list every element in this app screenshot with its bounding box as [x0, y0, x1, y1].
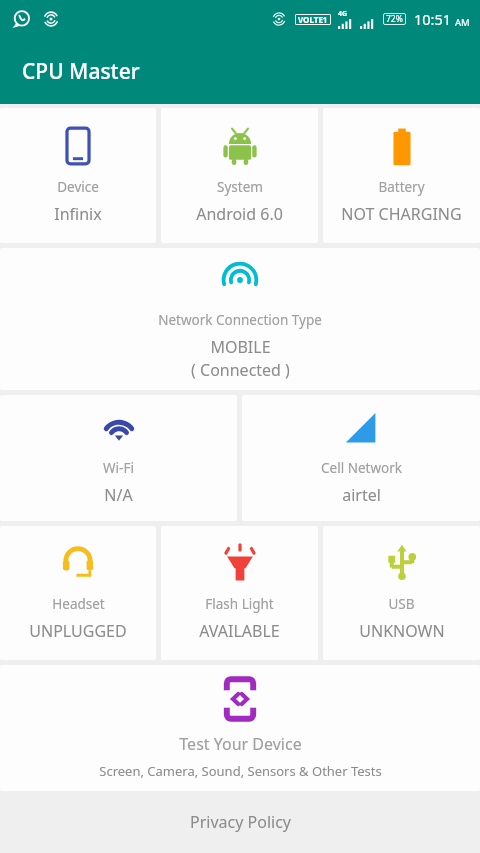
staticText: Device: [57, 178, 99, 196]
staticText: airtel: [342, 484, 381, 506]
staticText: AM: [455, 16, 470, 29]
staticText: AVAILABLE: [199, 620, 280, 642]
button[interactable]: Device: [0, 108, 156, 243]
staticText: MOBILE: [210, 336, 271, 358]
staticText: N/A: [104, 484, 133, 506]
button[interactable]: System: [161, 108, 318, 243]
staticText: ( Connected ): [191, 359, 290, 381]
staticText: 10:51: [414, 9, 452, 29]
button[interactable]: Wi-Fi: [0, 395, 237, 521]
staticText: 72%: [386, 13, 403, 25]
staticText: NOT CHARGING: [341, 203, 462, 225]
staticText: Headset: [52, 595, 105, 613]
staticText: System: [217, 178, 263, 196]
staticText: Network Connection Type: [158, 311, 322, 329]
button[interactable]: Flash Light: [161, 526, 318, 660]
button[interactable]: Headset: [0, 526, 156, 660]
staticText: 4G: [338, 9, 348, 19]
staticText: CPU Master: [22, 57, 140, 86]
other: CPU Master: [0, 38, 480, 104]
button[interactable]: USB: [323, 526, 480, 660]
staticText: Screen, Camera, Sound, Sensors & Other T…: [99, 762, 382, 780]
staticText: Test Your Device: [179, 733, 302, 755]
staticText: Cell Network: [321, 459, 402, 477]
staticText: Android 6.0: [196, 203, 283, 225]
button[interactable]: Test Your Device: [0, 665, 480, 791]
button[interactable]: Cell Network: [242, 395, 480, 521]
staticText: VOLTE1: [298, 14, 328, 25]
staticText: Battery: [378, 178, 425, 196]
button[interactable]: Privacy Policy: [182, 803, 299, 841]
button[interactable]: Network Connection Type: [0, 248, 480, 390]
staticText: USB: [388, 595, 415, 613]
staticText: UNKNOWN: [359, 620, 445, 642]
staticText: UNPLUGGED: [29, 620, 127, 642]
staticText: Wi-Fi: [103, 459, 134, 477]
staticText: Infinix: [54, 203, 102, 225]
staticText: Flash Light: [205, 595, 274, 613]
button[interactable]: Battery: [323, 108, 480, 243]
